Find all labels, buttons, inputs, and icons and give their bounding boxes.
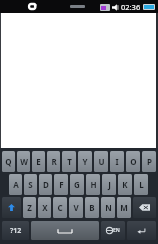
staticText: EN [113,227,120,234]
staticText: R [51,156,57,167]
button[interactable]: B [85,197,99,218]
button[interactable]: W [17,151,30,172]
staticText: U [98,156,105,167]
button[interactable]: E [32,151,45,172]
staticText: Q [5,156,12,167]
button[interactable]: P [142,151,156,172]
staticText: 02:36 [121,2,141,12]
button[interactable]: K [118,174,132,195]
staticText: Y [82,156,88,167]
staticText: C [57,202,63,213]
staticText: L [139,179,144,190]
staticText: F [59,179,64,190]
staticText: W [20,156,28,167]
staticText: E [36,156,41,167]
staticText: H [90,179,97,190]
staticText: ?12 [10,226,22,236]
staticText: O [130,156,137,167]
button[interactable]: Shift [2,197,21,218]
staticText: X [42,202,48,213]
button[interactable]: ?12 [2,221,29,240]
staticText: B [89,202,95,213]
button[interactable]: Y [78,151,92,172]
button[interactable]: Z [23,197,36,218]
button[interactable]: S [24,174,37,195]
button[interactable]: V [69,197,83,218]
button[interactable]: O [126,151,140,172]
button[interactable]: I [110,151,124,172]
staticText: G [74,179,80,190]
staticText: I [115,156,119,167]
button[interactable]: X [38,197,51,218]
staticText: J [108,179,111,190]
button[interactable]: R [47,151,60,172]
staticText: V [73,202,79,213]
button[interactable]: N [101,197,115,218]
staticText: T [67,156,72,167]
staticText: Z [27,202,32,213]
button[interactable]: Enter [127,221,156,240]
staticText: K [122,179,128,190]
staticText: D [43,179,49,190]
button[interactable]: T [62,151,76,172]
staticText: S [28,179,33,190]
staticText: A [13,179,19,190]
button[interactable]: Q [2,151,15,172]
button[interactable]: A [9,174,22,195]
button[interactable]: Change language [101,221,125,240]
button[interactable]: D [39,174,52,195]
button[interactable]: F [54,174,68,195]
staticText: N [105,202,112,213]
button[interactable]: M [117,197,131,218]
button[interactable]: L [134,174,148,195]
button[interactable]: Backspace [133,197,156,218]
button[interactable]: U [94,151,108,172]
button[interactable]: J [102,174,116,195]
staticText: P [147,156,152,167]
button[interactable]: H [86,174,100,195]
staticText: M [120,202,128,213]
button[interactable]: Space [31,221,99,240]
button[interactable]: C [53,197,67,218]
button[interactable]: G [70,174,84,195]
